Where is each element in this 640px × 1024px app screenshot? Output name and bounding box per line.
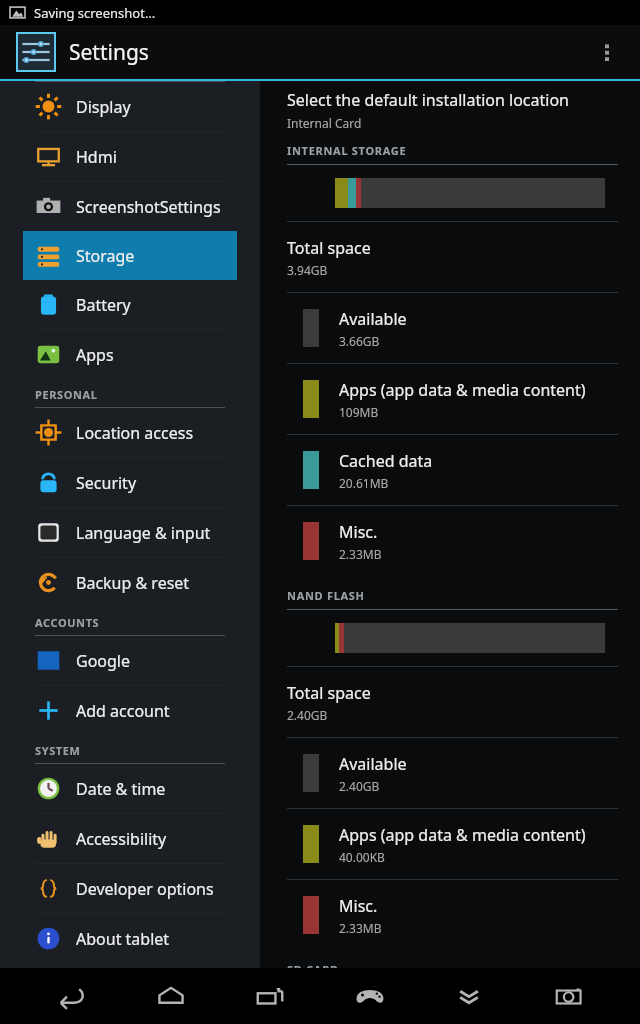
button[interactable]: Misc. <box>260 506 640 576</box>
staticText: Internal Card <box>287 115 362 131</box>
button[interactable]: Battery <box>23 280 237 329</box>
staticText: About tablet <box>76 928 170 950</box>
staticText: Available <box>339 753 407 775</box>
button[interactable]: Backup & reset <box>23 558 237 607</box>
button[interactable]: About tablet <box>23 914 237 963</box>
staticText: Misc. <box>339 521 378 543</box>
button[interactable]: Developer options <box>23 864 237 913</box>
button[interactable]: Recent apps <box>242 968 298 1024</box>
button[interactable]: Total space <box>260 222 640 292</box>
button[interactable]: Screenshot <box>541 968 597 1024</box>
button[interactable]: Apps (app data & media content) <box>260 809 640 879</box>
staticText: Storage <box>76 245 135 267</box>
staticText: Apps (app data & media content) <box>339 824 586 846</box>
staticText: 2.33MB <box>339 920 382 936</box>
button[interactable]: Total space <box>260 667 640 737</box>
staticText: Apps <box>76 344 114 366</box>
staticText: Total space <box>287 682 371 704</box>
staticText: Google <box>76 650 131 672</box>
staticText: 2.40GB <box>339 778 380 794</box>
staticText: ACCOUNTS <box>35 615 100 630</box>
staticText: Add account <box>76 700 170 722</box>
staticText: Display <box>76 96 131 118</box>
staticText: Location access <box>76 422 194 444</box>
button[interactable]: Misc. <box>260 880 640 950</box>
button[interactable]: Available <box>260 293 640 363</box>
staticText: INTERNAL STORAGE <box>287 143 407 158</box>
staticText: SYSTEM <box>35 743 81 758</box>
staticText: Date & time <box>76 778 166 800</box>
staticText: Accessibility <box>76 828 167 850</box>
button[interactable]: Google <box>23 636 237 685</box>
staticText: Language & input <box>76 522 211 544</box>
staticText: Developer options <box>76 878 214 900</box>
button[interactable]: Display <box>23 82 237 131</box>
button[interactable]: Available <box>260 738 640 808</box>
staticText: PERSONAL <box>35 387 98 402</box>
button[interactable]: Storage <box>23 231 237 280</box>
staticText: 2.33MB <box>339 546 382 562</box>
button[interactable]: Apps (app data & media content) <box>260 364 640 434</box>
button[interactable]: Accessibility <box>23 814 237 863</box>
button[interactable]: Select the default installation location <box>260 89 640 131</box>
button[interactable]: Home <box>143 968 199 1024</box>
staticText: Backup & reset <box>76 572 190 594</box>
staticText: 3.66GB <box>339 333 380 349</box>
staticText: 3.94GB <box>287 262 328 278</box>
staticText: Cached data <box>339 450 433 472</box>
button[interactable]: ScreenshotSettings <box>23 182 237 231</box>
button[interactable]: Game controls <box>342 968 398 1024</box>
staticText: 40.00KB <box>339 849 385 865</box>
staticText: Settings <box>69 38 149 67</box>
button[interactable]: Hdmi <box>23 132 237 181</box>
staticText: Total space <box>287 237 371 259</box>
staticText: Security <box>76 472 137 494</box>
staticText: NAND FLASH <box>287 588 365 603</box>
staticText: Battery <box>76 294 131 316</box>
staticText: SD CARD <box>287 962 339 968</box>
staticText: 109MB <box>339 404 379 420</box>
button[interactable]: Date & time <box>23 764 237 813</box>
staticText: 2.40GB <box>287 707 328 723</box>
button[interactable]: Language & input <box>23 508 237 557</box>
staticText: Saving screenshot... <box>34 4 156 22</box>
staticText: ScreenshotSettings <box>76 196 221 218</box>
button[interactable]: Hide navigation <box>441 968 497 1024</box>
button[interactable]: Back <box>43 968 99 1024</box>
staticText: Misc. <box>339 895 378 917</box>
button[interactable]: Cached data <box>260 435 640 505</box>
staticText: Apps (app data & media content) <box>339 379 586 401</box>
staticText: Hdmi <box>76 146 117 168</box>
button[interactable]: Security <box>23 458 237 507</box>
staticText: Select the default installation location <box>287 89 569 111</box>
staticText: 20.61MB <box>339 475 389 491</box>
staticText: Available <box>339 308 407 330</box>
button[interactable]: Location access <box>23 408 237 457</box>
button[interactable]: Add account <box>23 686 237 735</box>
button[interactable]: More options <box>584 29 630 75</box>
button[interactable]: Apps <box>23 330 237 379</box>
